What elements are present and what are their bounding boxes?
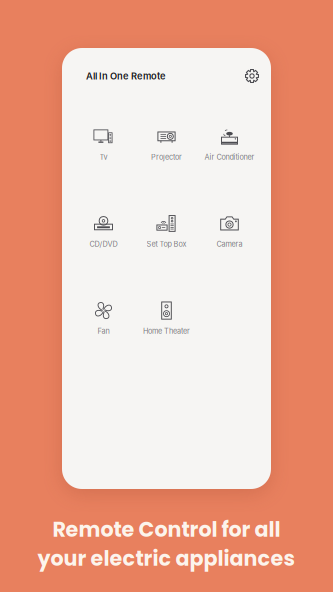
staticText: Air Conditioner xyxy=(204,153,254,161)
button[interactable]: Settings xyxy=(245,69,259,83)
staticText: Tv xyxy=(99,153,107,161)
button[interactable]: Air Conditioner xyxy=(198,126,261,162)
staticText: CD/DVD xyxy=(89,240,117,248)
button[interactable]: Set Top Box xyxy=(135,213,198,249)
button[interactable]: Camera xyxy=(198,213,261,249)
staticText: Camera xyxy=(216,240,242,248)
staticText: Projector xyxy=(151,153,182,161)
button[interactable]: Tv xyxy=(72,126,135,162)
staticText: Home Theater xyxy=(143,327,190,335)
staticText: your electric appliances xyxy=(37,544,295,573)
button[interactable]: Fan xyxy=(72,300,135,336)
button[interactable]: CD/DVD xyxy=(72,213,135,249)
staticText: All In One Remote xyxy=(86,70,166,82)
staticText: Fan xyxy=(97,327,109,335)
staticText: Remote Control for all xyxy=(52,515,280,544)
staticText: Set Top Box xyxy=(146,240,186,248)
button[interactable]: Projector xyxy=(135,126,198,162)
button[interactable]: Home Theater xyxy=(135,300,198,336)
